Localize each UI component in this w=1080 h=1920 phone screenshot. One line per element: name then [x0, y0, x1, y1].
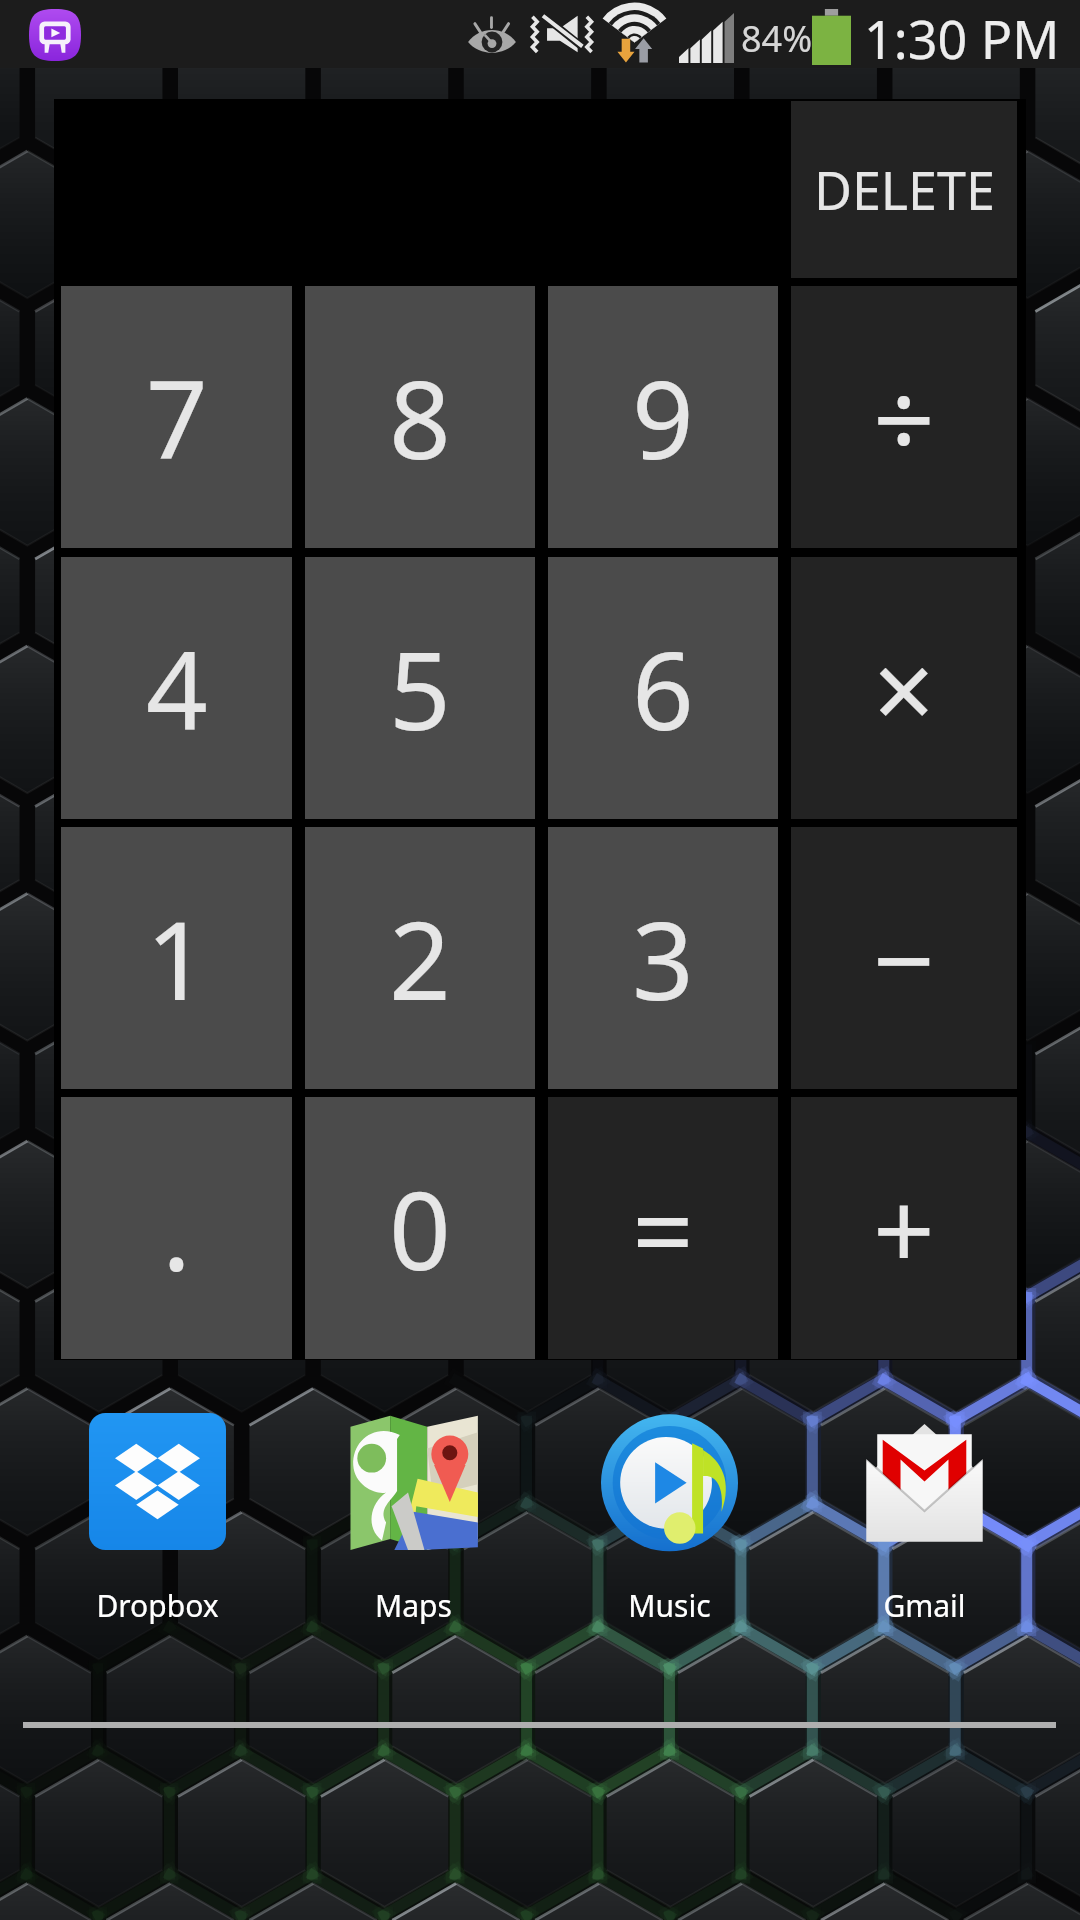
staticText: 4 [146, 615, 208, 762]
staticText: Maps [375, 1585, 452, 1626]
button[interactable]: 6 [548, 557, 778, 819]
staticText: − [873, 885, 935, 1032]
button[interactable]: × [791, 557, 1017, 819]
button[interactable]: 9 [548, 286, 778, 548]
button[interactable]: 5 [305, 557, 535, 819]
staticText: 9 [632, 344, 694, 491]
staticText: 8 [389, 344, 451, 491]
staticText: × [873, 615, 935, 762]
button[interactable]: DELETE [791, 101, 1017, 278]
button[interactable]: Dropbox [47, 1413, 267, 1628]
staticText: 1:30 PM [864, 3, 1060, 71]
staticText: 2 [389, 885, 451, 1032]
staticText: = [632, 1155, 694, 1302]
staticText: 1 [146, 885, 208, 1032]
button[interactable]: Music [559, 1413, 779, 1628]
staticText: . [162, 1155, 191, 1302]
button[interactable]: Maps [303, 1413, 523, 1628]
staticText: Music [628, 1585, 711, 1626]
button[interactable]: 2 [305, 827, 535, 1089]
staticText: + [873, 1155, 935, 1302]
button[interactable]: − [791, 827, 1017, 1089]
button[interactable]: = [548, 1097, 778, 1359]
button[interactable]: 8 [305, 286, 535, 548]
staticText: 6 [632, 615, 694, 762]
button[interactable]: 7 [61, 286, 292, 548]
button[interactable]: Gmail [814, 1413, 1034, 1628]
staticText: 3 [632, 885, 694, 1032]
button[interactable]: ÷ [791, 286, 1017, 548]
staticText: Gmail [883, 1585, 966, 1626]
button[interactable]: 4 [61, 557, 292, 819]
staticText: 5 [389, 615, 451, 762]
button[interactable]: 3 [548, 827, 778, 1089]
staticText: 7 [146, 344, 208, 491]
staticText: 0 [389, 1155, 451, 1302]
staticText: ÷ [873, 344, 935, 491]
button[interactable]: . [61, 1097, 292, 1359]
staticText: DELETE [814, 154, 995, 225]
staticText: Dropbox [96, 1585, 219, 1626]
button[interactable]: 1 [61, 827, 292, 1089]
staticText: 84% [741, 14, 813, 63]
button[interactable]: + [791, 1097, 1017, 1359]
button[interactable]: 0 [305, 1097, 535, 1359]
